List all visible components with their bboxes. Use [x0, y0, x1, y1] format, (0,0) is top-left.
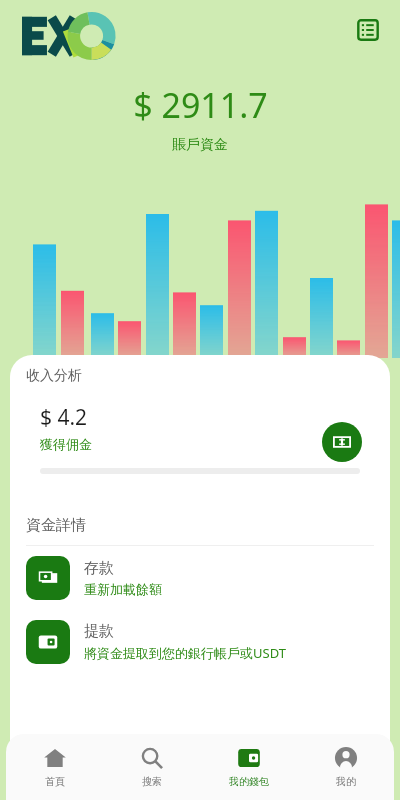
button[interactable]: 我的 [297, 734, 394, 800]
button[interactable]: 搜索 [103, 734, 200, 800]
staticText: 搜索 [142, 775, 162, 788]
staticText: 將資金提取到您的銀行帳戶或USDT [84, 644, 286, 662]
staticText: 賬戶資金 [172, 136, 228, 154]
staticText: 收入分析 [26, 367, 82, 385]
staticText: 我的 [336, 775, 356, 788]
staticText: $ 2911.7 [133, 82, 268, 128]
staticText: 存款 [84, 559, 114, 578]
staticText: 獲得佣金 [40, 436, 92, 452]
staticText: 重新加載餘額 [84, 581, 162, 597]
button[interactable]: 存款 [26, 556, 374, 600]
button[interactable]: 提款 [26, 620, 374, 664]
staticText: 提款 [84, 622, 114, 641]
staticText: 首頁 [45, 775, 65, 788]
staticText: 我的錢包 [229, 775, 269, 788]
button[interactable]: 首頁 [6, 734, 103, 800]
button[interactable]: $ 4.2 [26, 397, 374, 486]
staticText: 資金詳情 [26, 516, 86, 535]
button[interactable]: Records [350, 12, 386, 48]
button[interactable]: 我的錢包 [200, 734, 297, 800]
staticText: $ 4.2 [40, 403, 88, 432]
button[interactable]: Commission [322, 422, 362, 462]
